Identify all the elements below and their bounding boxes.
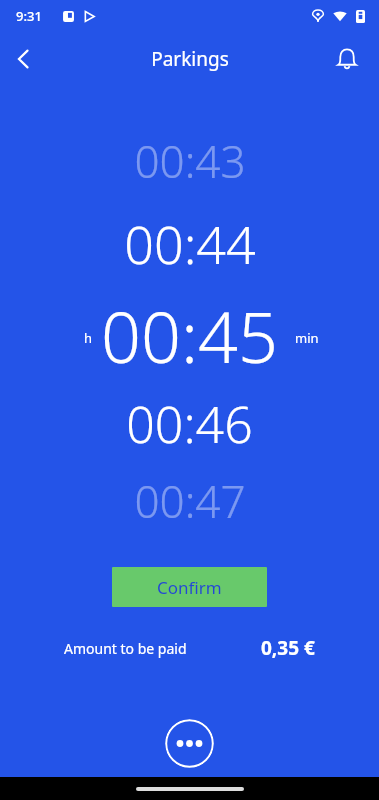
button[interactable]: 00:47: [0, 471, 379, 531]
staticText: 0,35 €: [261, 635, 315, 661]
staticText: 00:43: [134, 131, 246, 191]
button[interactable]: 00:45: [0, 288, 379, 383]
staticText: 9:31: [16, 7, 42, 25]
button[interactable]: More options: [165, 719, 214, 768]
staticText: 00:44: [124, 208, 256, 279]
staticText: Confirm: [157, 576, 222, 599]
button[interactable]: 00:46: [0, 390, 379, 458]
staticText: 00:47: [134, 471, 246, 531]
button[interactable]: 00:44: [0, 208, 379, 279]
button[interactable]: 00:43: [0, 131, 379, 191]
button[interactable]: Confirm: [112, 567, 267, 607]
staticText: Parkings: [151, 46, 229, 72]
staticText: 00:46: [126, 390, 253, 458]
staticText: Amount to be paid: [64, 639, 187, 658]
staticText: min: [295, 329, 319, 347]
button[interactable]: Notifications: [323, 35, 371, 83]
staticText: h: [84, 329, 93, 347]
button[interactable]: Back: [0, 35, 48, 83]
staticText: 00:45: [101, 288, 278, 383]
